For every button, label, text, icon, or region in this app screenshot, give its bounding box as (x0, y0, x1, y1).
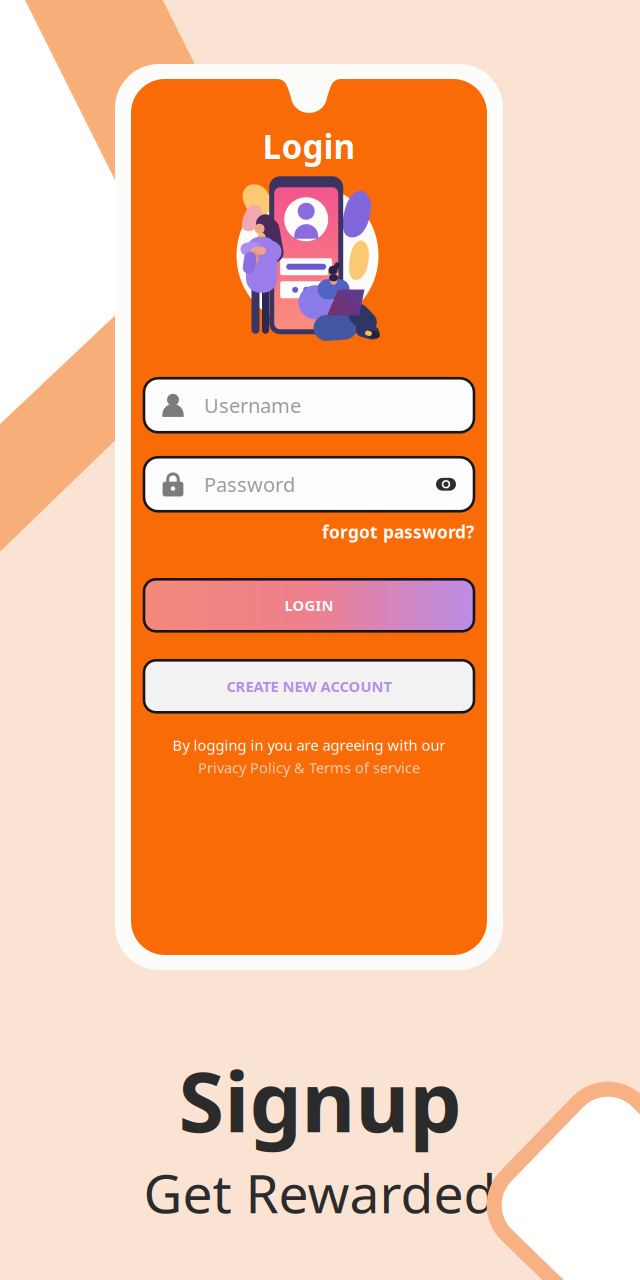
staticText: Password (204, 471, 295, 498)
staticText: Username (204, 392, 301, 419)
staticText: Login (262, 124, 355, 168)
button[interactable]: Password (144, 457, 474, 511)
staticText: Signup (178, 1045, 461, 1155)
staticText: CREATE NEW ACCOUNT (226, 676, 391, 696)
staticText: Get Rewarded (143, 1157, 496, 1228)
button[interactable]: CREATE NEW ACCOUNT (144, 660, 474, 712)
button[interactable]: LOGIN (144, 579, 474, 631)
button[interactable]: forgot password? (322, 520, 474, 543)
staticText: Privacy Policy & Terms of service (198, 758, 420, 777)
staticText: LOGIN (284, 595, 333, 615)
button[interactable]: Username (144, 378, 474, 432)
staticText: forgot password? (322, 520, 474, 543)
staticText: By logging in you are agreeing with our (172, 735, 445, 755)
